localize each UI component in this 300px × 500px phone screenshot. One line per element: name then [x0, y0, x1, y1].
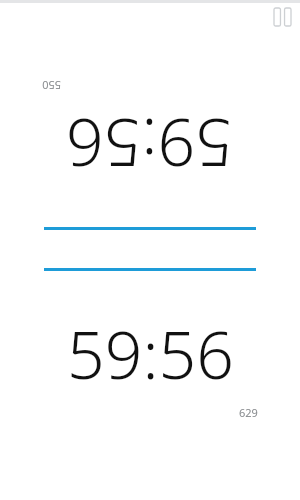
staticText: 629 — [239, 405, 258, 420]
staticText: 59:56 — [67, 308, 234, 398]
button[interactable]: 629 — [0, 286, 300, 426]
staticText: 59:56 — [66, 100, 233, 190]
button[interactable]: 550 — [0, 72, 300, 212]
staticText: 550 — [42, 78, 61, 93]
button[interactable]: Pause — [268, 3, 296, 31]
